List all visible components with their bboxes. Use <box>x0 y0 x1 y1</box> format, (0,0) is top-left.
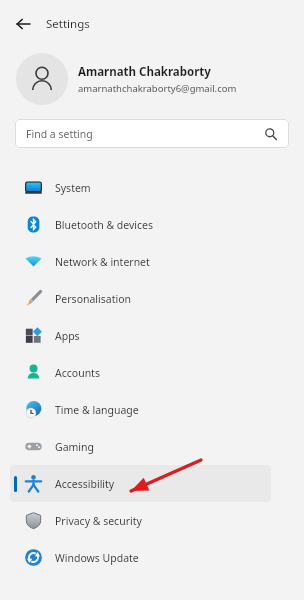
staticText: Accounts <box>55 366 100 380</box>
button[interactable]: Bluetooth & devices <box>0 206 304 243</box>
staticText: Windows Update <box>55 551 139 565</box>
staticText: System <box>55 181 91 195</box>
button[interactable]: Network & internet <box>0 243 304 280</box>
staticText: Network & internet <box>55 255 150 269</box>
button[interactable]: Privacy & security <box>0 502 304 539</box>
button[interactable]: Accounts <box>0 354 304 391</box>
button[interactable]: Back <box>10 11 36 37</box>
staticText: Apps <box>55 329 80 343</box>
staticText: Accessibility <box>55 477 115 491</box>
button[interactable]: Time & language <box>0 391 304 428</box>
button[interactable]: Find a setting <box>15 119 289 148</box>
staticText: Time & language <box>55 403 139 417</box>
button[interactable]: Apps <box>0 317 304 354</box>
staticText: amarnathchakraborty6@gmail.com <box>78 82 237 95</box>
staticText: Settings <box>46 16 90 32</box>
staticText: Gaming <box>55 440 95 454</box>
button[interactable]: System <box>0 169 304 206</box>
button[interactable]: Amarnath Chakraborty <box>0 48 304 110</box>
staticText: Amarnath Chakraborty <box>78 64 211 80</box>
staticText: Find a setting <box>26 127 93 141</box>
staticText: Bluetooth & devices <box>55 218 154 232</box>
button[interactable]: Accessibility <box>0 465 304 502</box>
staticText: Personalisation <box>55 292 132 306</box>
button[interactable]: Personalisation <box>0 280 304 317</box>
staticText: Privacy & security <box>55 514 142 528</box>
button[interactable]: Gaming <box>0 428 304 465</box>
button[interactable]: Windows Update <box>0 539 304 576</box>
